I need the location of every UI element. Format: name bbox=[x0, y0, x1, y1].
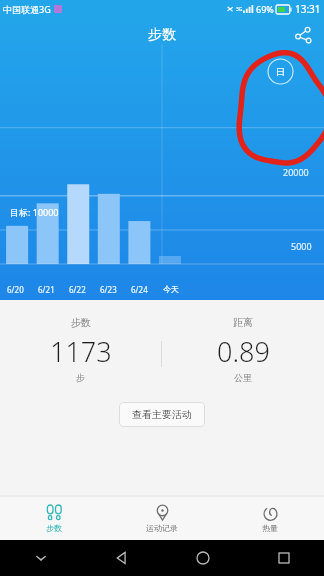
staticText: 今天 bbox=[163, 284, 179, 294]
staticText: 6/24 bbox=[131, 284, 148, 295]
staticText: 步数 bbox=[148, 26, 176, 44]
staticText: 1173 bbox=[50, 333, 112, 370]
button[interactable]: 运动记录 bbox=[108, 496, 216, 540]
staticText: 5000 bbox=[291, 240, 312, 252]
button[interactable]: 步数 bbox=[0, 316, 161, 383]
button[interactable]: Recent apps bbox=[243, 540, 324, 576]
button[interactable]: 距离 bbox=[162, 316, 324, 383]
staticText: 6/23 bbox=[100, 284, 117, 295]
button[interactable]: 步数 bbox=[0, 496, 108, 540]
staticText: 69% bbox=[256, 3, 274, 15]
button[interactable]: Hide navigation bar bbox=[0, 540, 81, 576]
button[interactable]: 热量 bbox=[216, 496, 324, 540]
staticText: 运动记录 bbox=[146, 523, 178, 533]
staticText: 步数 bbox=[46, 523, 62, 533]
button[interactable]: Share bbox=[290, 22, 316, 48]
staticText: 3G bbox=[236, 6, 243, 13]
staticText: 6/21 bbox=[38, 284, 55, 295]
button[interactable]: 查看主要活动 bbox=[119, 402, 205, 427]
staticText: 步 bbox=[76, 372, 85, 383]
staticText: 日 bbox=[276, 66, 285, 77]
staticText: 查看主要活动 bbox=[132, 408, 192, 421]
staticText: 目标: 10000 bbox=[10, 206, 59, 218]
staticText: 距离 bbox=[233, 316, 253, 329]
staticText: 13:31 bbox=[295, 2, 321, 16]
staticText: 20000 bbox=[283, 166, 309, 178]
staticText: 公里 bbox=[234, 372, 252, 383]
button[interactable]: Home bbox=[162, 540, 243, 576]
staticText: 6/20 bbox=[7, 284, 24, 295]
staticText: 6/22 bbox=[69, 284, 86, 295]
staticText: 热量 bbox=[262, 523, 278, 533]
button[interactable]: Back bbox=[81, 540, 162, 576]
button[interactable]: Switch to day view bbox=[267, 58, 294, 85]
staticText: 0.89 bbox=[217, 333, 270, 370]
staticText: 步数 bbox=[71, 316, 91, 329]
staticText: 中国联通3G bbox=[3, 3, 51, 15]
